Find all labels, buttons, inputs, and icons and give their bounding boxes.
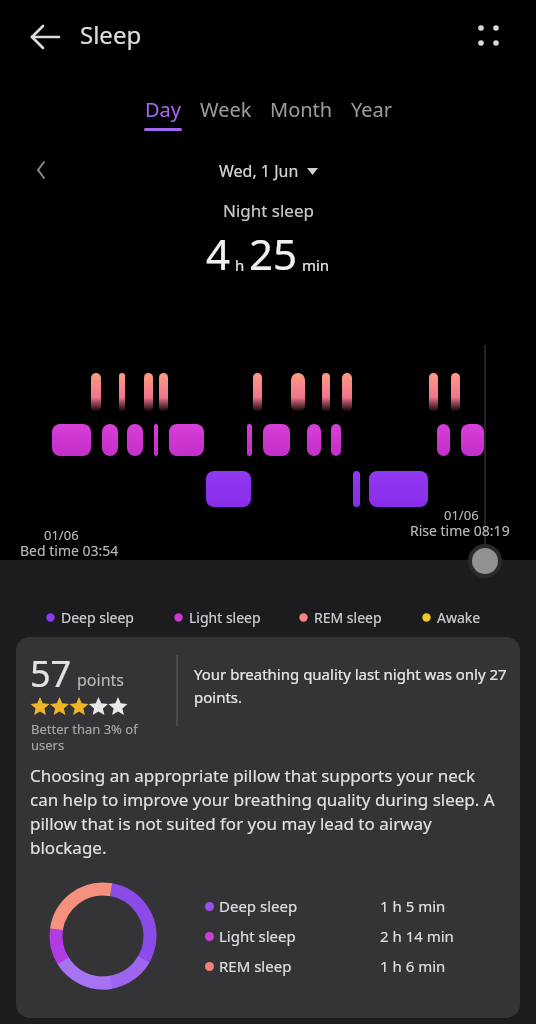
button[interactable]: Week: [200, 96, 252, 123]
staticText: REM sleep: [219, 956, 292, 976]
button[interactable]: [467, 543, 503, 579]
staticText: Choosing an appropriate pillow that supp…: [30, 764, 476, 787]
staticText: Awake: [437, 608, 481, 627]
button[interactable]: [470, 17, 508, 55]
staticText: 2 h 14 min: [380, 926, 454, 946]
button[interactable]: Year: [351, 96, 393, 123]
staticText: Rise time 08:19: [410, 521, 510, 540]
staticText: points: [77, 669, 124, 691]
staticText: REM sleep: [314, 608, 382, 627]
staticText: Bed time 03:54: [20, 541, 119, 560]
staticText: Deep sleep: [219, 896, 298, 916]
staticText: Better than 3% of: [31, 720, 138, 738]
staticText: points.: [194, 687, 243, 707]
staticText: can help to improve your breathing quali…: [30, 788, 495, 811]
staticText: 57: [30, 649, 72, 698]
button[interactable]: Month: [270, 96, 333, 123]
staticText: 1 h 5 min: [380, 896, 446, 916]
staticText: min: [298, 255, 330, 275]
button[interactable]: [28, 22, 62, 52]
staticText: 1 h 6 min: [380, 956, 446, 976]
staticText: Deep sleep: [61, 608, 134, 627]
staticText: Day: [145, 96, 182, 123]
button[interactable]: [30, 158, 54, 182]
staticText: 01/06: [444, 506, 479, 524]
staticText: h: [231, 255, 249, 275]
staticText: 4: [206, 225, 231, 282]
staticText: pillow that is not suited for you may le…: [30, 812, 432, 835]
staticText: Light sleep: [219, 926, 296, 946]
staticText: 01/06: [44, 526, 79, 544]
staticText: Your breathing quality last night was on…: [194, 664, 507, 684]
staticText: 25: [249, 225, 298, 282]
staticText: users: [31, 736, 65, 754]
button[interactable]: Wed, 1 Jun: [0, 160, 536, 182]
staticText: Sleep: [80, 18, 142, 51]
button[interactable]: Day: [144, 96, 182, 131]
staticText: Light sleep: [189, 608, 261, 627]
staticText: Night sleep: [223, 199, 314, 222]
staticText: blockage.: [30, 836, 107, 859]
staticText: Wed, 1 Jun: [219, 160, 299, 182]
